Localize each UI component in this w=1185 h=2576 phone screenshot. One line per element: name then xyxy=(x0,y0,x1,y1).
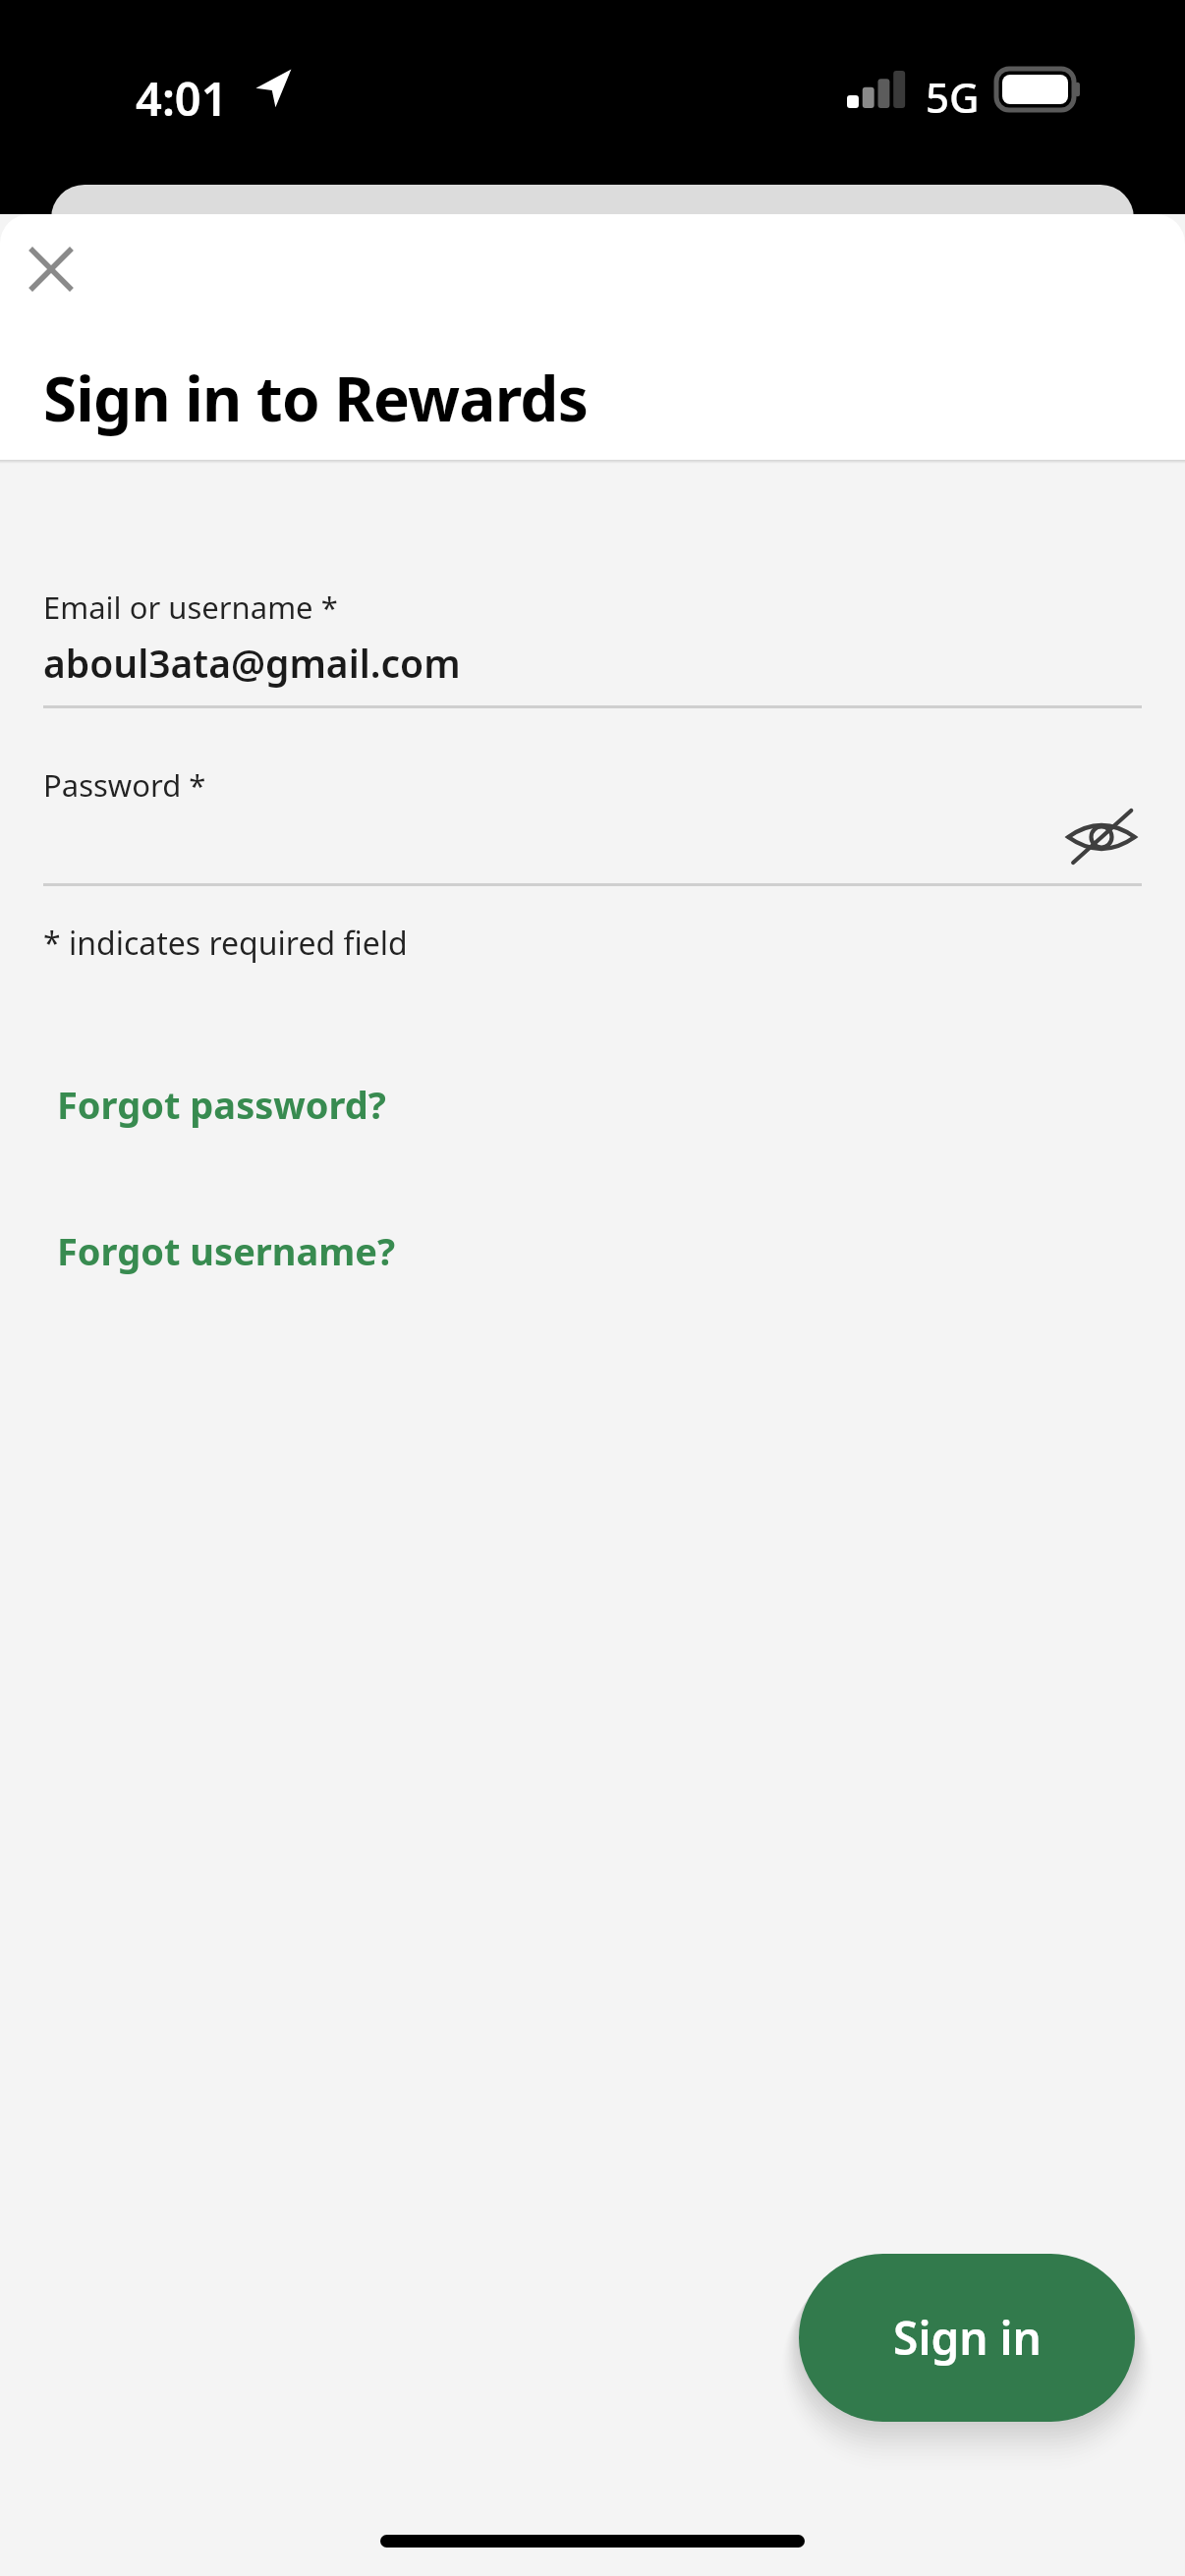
staticText: Forgot password? xyxy=(57,1079,386,1130)
button[interactable]: Sign in xyxy=(799,2254,1135,2422)
staticText: 5G xyxy=(926,69,980,125)
button[interactable]: Forgot password? xyxy=(35,1059,408,1149)
staticText: Sign in to Rewards xyxy=(43,357,589,439)
staticText: Email or username * xyxy=(43,587,338,628)
button[interactable]: Forgot username? xyxy=(35,1205,418,1296)
staticText: Password * xyxy=(43,764,206,806)
button[interactable]: aboul3ata@gmail.com xyxy=(43,637,461,689)
staticText: 4:01 xyxy=(136,67,228,130)
button[interactable]: Close xyxy=(18,236,85,303)
staticText: * indicates required field xyxy=(43,922,408,965)
button[interactable]: Show password xyxy=(1055,792,1148,882)
staticText: Forgot username? xyxy=(57,1225,396,1276)
staticText: Sign in xyxy=(893,2307,1042,2369)
